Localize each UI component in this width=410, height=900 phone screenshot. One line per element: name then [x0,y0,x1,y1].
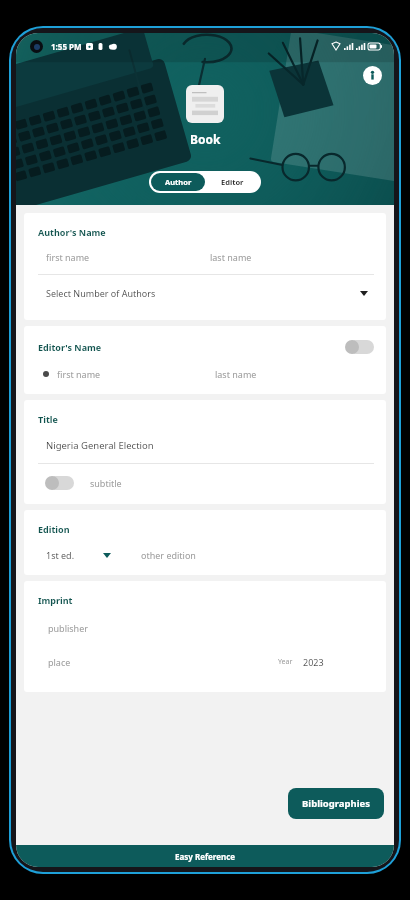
staticText: publisher [48,622,88,634]
button[interactable]: other edition [141,549,374,561]
button[interactable]: Bibliographies [288,788,384,819]
button[interactable]: Toggle [344,339,374,354]
button[interactable]: Information [363,66,382,85]
staticText: 2023 [303,656,324,668]
staticText: Bibliographies [302,797,370,810]
button[interactable]: place [48,656,278,668]
staticText: Title [38,413,58,425]
staticText: Imprint [38,594,73,606]
staticText: Edition [38,523,70,535]
button[interactable]: 1st ed. [46,549,111,561]
staticText: subtitle [90,477,122,489]
staticText: Nigeria General Election [46,439,154,452]
button[interactable]: Author [151,173,205,191]
button[interactable]: first name [57,368,215,380]
staticText: Year [278,657,293,667]
staticText: Select Number of Authors [46,287,156,299]
staticText: Author's Name [38,226,106,238]
staticText: place [48,656,71,668]
staticText: Editor's Name [38,341,102,353]
staticText: Easy Reference [175,851,236,862]
staticText: last name [210,251,252,263]
button[interactable]: Nigeria General Election [38,439,374,452]
staticText: Book [190,131,221,147]
staticText: first name [46,251,90,263]
button[interactable]: last name [215,368,374,380]
button[interactable]: Editor [205,173,259,191]
button[interactable]: Select Number of Authors [38,275,374,310]
button[interactable]: last name [210,251,374,263]
button[interactable]: publisher [38,622,374,634]
button[interactable]: Easy Reference [16,845,394,867]
staticText: 1:55 PM [51,41,82,52]
staticText: first name [57,368,101,380]
button[interactable]: Toggle [44,475,74,490]
staticText: Author [165,177,192,187]
staticText: Editor [221,177,244,187]
button[interactable]: first name [46,251,210,263]
staticText: other edition [141,549,196,561]
staticText: last name [215,368,257,380]
staticText: 1st ed. [46,549,75,561]
